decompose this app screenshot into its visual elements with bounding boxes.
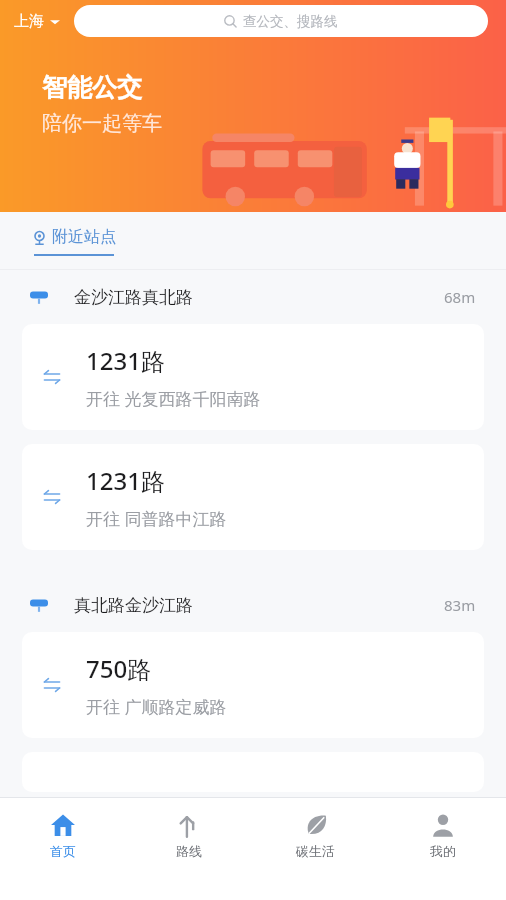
staticText: 开往 同普路中江路 (86, 507, 227, 530)
staticText: 真北路金沙江路 (74, 595, 444, 616)
button[interactable]: 附近站点 (32, 227, 116, 256)
staticText: 68m (444, 287, 476, 307)
button[interactable]: 真北路金沙江路 (30, 578, 476, 632)
staticText: 金沙江路真北路 (74, 287, 444, 308)
staticText: 附近站点 (52, 227, 116, 247)
staticText: 1231路 (86, 464, 165, 497)
staticText: 开往 广顺路定威路 (86, 695, 227, 718)
button[interactable]: 750路 (22, 632, 484, 738)
button[interactable]: 首页 (0, 798, 126, 900)
button[interactable]: 上海 (14, 12, 66, 31)
staticText: 碳生活 (296, 843, 335, 859)
button[interactable]: 我的 (379, 798, 506, 900)
button[interactable]: 查公交、搜路线 (74, 5, 488, 37)
staticText: 陪你一起等车 (42, 111, 162, 136)
staticText: 1231路 (86, 344, 165, 377)
staticText: 83m (444, 595, 476, 615)
button[interactable]: 1231路 (22, 444, 484, 550)
button[interactable]: 碳生活 (252, 798, 379, 900)
staticText: 我的 (430, 843, 456, 859)
staticText: 路线 (176, 843, 202, 859)
staticText: 开往 光复西路千阳南路 (86, 387, 261, 410)
staticText: 智能公交 (42, 72, 142, 103)
button[interactable]: 路线 (126, 798, 252, 900)
staticText: 查公交、搜路线 (243, 13, 338, 30)
staticText: 首页 (50, 843, 76, 859)
button[interactable]: 金沙江路真北路 (30, 270, 476, 324)
button[interactable]: 1231路 (22, 324, 484, 430)
staticText: 750路 (86, 652, 152, 685)
staticText: 上海 (14, 12, 44, 31)
